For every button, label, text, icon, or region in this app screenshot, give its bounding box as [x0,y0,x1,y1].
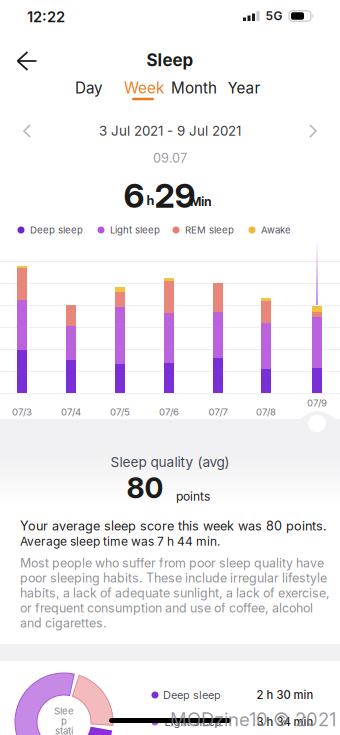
staticText: REM sleep [185,224,234,236]
button[interactable]: Day [66,75,112,101]
staticText: 2 h 30 min [256,688,313,702]
staticText: Slee [54,705,74,717]
staticText: Min [190,194,212,209]
button[interactable] [306,123,318,139]
staticText: Average sleep time was 7 h 44 min. [20,534,220,549]
staticText: Deep sleep [30,224,83,236]
staticText: 07/7 [208,406,227,418]
button[interactable]: Month [164,75,224,101]
staticText: 07/4 [61,406,81,418]
staticText: stati [55,725,73,735]
staticText: Most people who suffer from poor sleep q… [20,556,324,570]
button[interactable]: Week [120,75,168,101]
staticText: 80 [126,471,163,505]
staticText: 07/9 [307,397,327,409]
staticText: 3 Jul 2021 - 9 Jul 2021 [99,123,241,139]
staticText: 29 [154,176,195,215]
staticText: habits, a lack of adequate sunlight, a l… [20,586,330,600]
staticText: Day [75,79,103,97]
staticText: Month [171,79,217,97]
staticText: Your average sleep score this week was 8… [20,518,327,533]
staticText: Deep sleep [163,689,221,701]
button[interactable] [10,45,44,77]
staticText: MODzine10 © 2021 [170,709,336,730]
staticText: 09.07 [153,150,187,165]
staticText: 07/8 [256,406,276,418]
staticText: poor sleeping habits. These include irre… [20,571,327,585]
staticText: Week [124,79,164,97]
staticText: 5G [265,9,282,23]
staticText: points [176,489,210,504]
staticText: Sleep quality (avg) [110,454,229,470]
staticText: 07/5 [110,406,130,418]
staticText: 07/6 [159,406,179,418]
staticText: Year [227,79,260,97]
staticText: Light sleep [110,224,160,236]
staticText: 6 [123,176,144,215]
button[interactable]: Year [221,75,267,101]
staticText: p [61,715,67,727]
staticText: 3 h 34 min [256,715,313,729]
staticText: or frequent consumption and use of coffe… [20,601,313,615]
staticText: 12:22 [27,8,65,26]
staticText: Light sleep [164,716,221,728]
staticText: and cigarettes. [20,616,107,630]
staticText: Awake [261,224,291,236]
button[interactable] [22,123,34,139]
staticText: h [146,193,154,208]
staticText: 07/3 [12,406,32,418]
staticText: Sleep [146,50,193,70]
